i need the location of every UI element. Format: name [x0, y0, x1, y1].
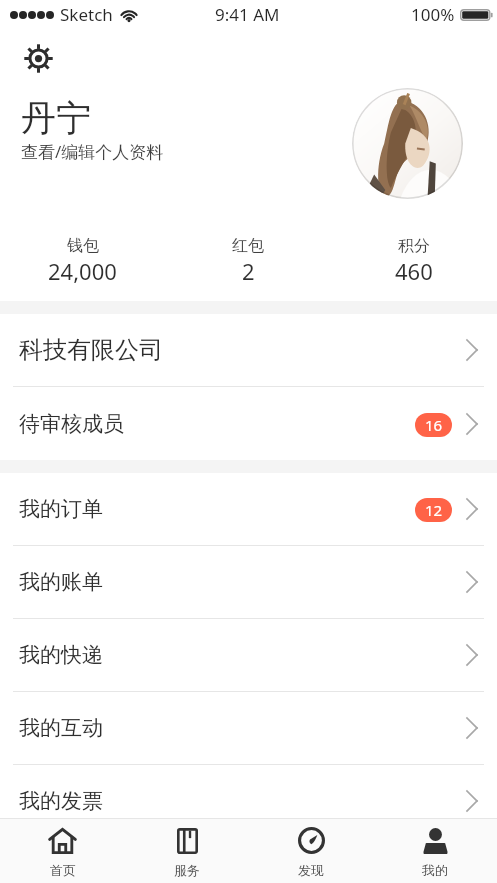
- staticText: 钱包: [67, 236, 99, 256]
- button[interactable]: 发现: [249, 819, 373, 883]
- button[interactable]: 钱包: [0, 236, 165, 286]
- staticText: 16: [425, 415, 443, 435]
- staticText: 丹宁: [21, 96, 91, 140]
- staticText: 积分: [398, 236, 430, 256]
- button[interactable]: 科技有限公司: [0, 314, 497, 386]
- staticText: 24,000: [48, 256, 117, 286]
- button[interactable]: 首页: [0, 819, 125, 883]
- button[interactable]: 服务: [125, 819, 249, 883]
- staticText: 100%: [411, 3, 455, 26]
- staticText: 发现: [298, 862, 324, 878]
- button[interactable]: Profile photo: [352, 88, 463, 199]
- staticText: Sketch: [60, 3, 113, 26]
- button[interactable]: 我的订单: [0, 473, 497, 545]
- button[interactable]: 我的账单: [0, 546, 497, 618]
- staticText: 服务: [174, 862, 200, 878]
- staticText: 查看/编辑个人资料: [21, 140, 164, 163]
- staticText: 首页: [50, 862, 76, 878]
- staticText: 我的: [422, 862, 448, 878]
- button[interactable]: 我的发票: [0, 765, 497, 837]
- staticText: 460: [395, 256, 433, 286]
- staticText: 9:41 AM: [215, 3, 280, 26]
- staticText: 2: [242, 256, 255, 286]
- staticText: 我的发票: [19, 788, 103, 814]
- staticText: 我的互动: [19, 715, 103, 741]
- button[interactable]: 积分: [331, 236, 497, 286]
- staticText: 我的订单: [19, 496, 103, 522]
- button[interactable]: 红包: [165, 236, 331, 286]
- button[interactable]: 我的互动: [0, 692, 497, 764]
- staticText: 科技有限公司: [19, 335, 163, 365]
- staticText: 红包: [232, 236, 264, 256]
- staticText: 我的账单: [19, 569, 103, 595]
- button[interactable]: 我的: [373, 819, 497, 883]
- button[interactable]: Settings: [16, 36, 61, 81]
- button[interactable]: 我的快递: [0, 619, 497, 691]
- button[interactable]: 待审核成员: [0, 387, 497, 460]
- staticText: 12: [425, 500, 443, 520]
- staticText: 我的快递: [19, 642, 103, 668]
- staticText: 待审核成员: [19, 411, 124, 437]
